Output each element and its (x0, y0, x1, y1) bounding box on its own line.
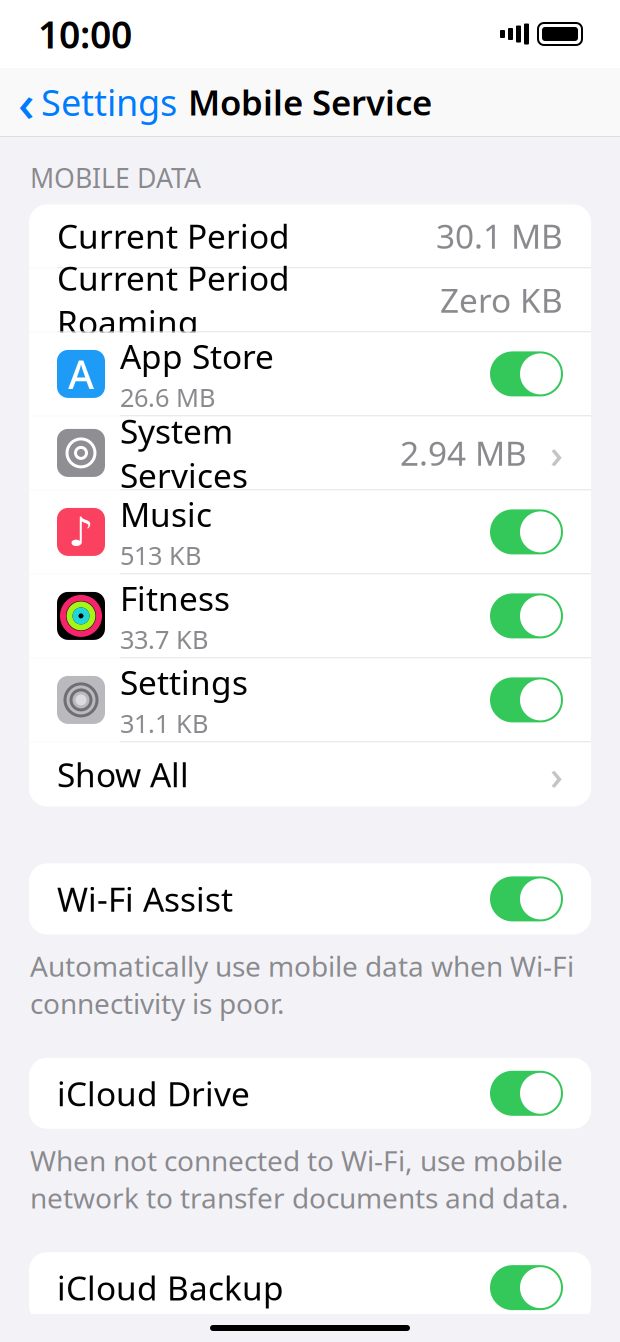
staticText: Automatically use mobile data when Wi-Fi… (30, 947, 574, 1022)
staticText: 513 KB (120, 538, 201, 572)
staticText: iCloud Drive (57, 1071, 250, 1115)
staticText: iCloud Backup (57, 1265, 284, 1310)
staticText: 26.6 MB (120, 380, 215, 414)
staticText: 33.7 KB (120, 622, 208, 656)
staticText: Mobile Service (188, 79, 432, 125)
button[interactable]: Show All (29, 742, 591, 806)
button[interactable]: iCloud Backup (29, 1252, 591, 1323)
staticText: › (550, 426, 563, 479)
staticText: MOBILE DATA (30, 160, 201, 195)
staticText: Settings (41, 78, 177, 126)
staticText: ♪ (68, 509, 94, 555)
staticText: Show All (57, 752, 189, 797)
button[interactable]: Settings (29, 658, 591, 741)
staticText: 10:00 (38, 9, 132, 59)
staticText: 2.94 MB (400, 431, 527, 475)
staticText: App Store (120, 334, 274, 378)
staticText: Wi-Fi Assist (57, 877, 233, 921)
staticText: Current Period Roaming (57, 256, 290, 344)
staticText: When not connected to Wi-Fi, use mobile … (30, 1142, 569, 1216)
button[interactable]: A (29, 332, 591, 415)
staticText: Current Period (57, 214, 290, 258)
button[interactable]: Wi-Fi Assist (29, 863, 591, 934)
button[interactable]: Current Period Roaming (29, 268, 591, 331)
button[interactable]: Current Period (29, 204, 591, 267)
staticText: 31.1 KB (120, 706, 208, 740)
button[interactable]: Fitness (29, 574, 591, 657)
button[interactable]: ‹ (0, 62, 177, 142)
button[interactable]: System Services (29, 416, 591, 489)
staticText: Zero KB (440, 278, 563, 322)
button[interactable]: iCloud Drive (29, 1058, 591, 1129)
staticText: Music (120, 492, 212, 536)
staticText: Fitness (120, 576, 230, 620)
staticText: › (550, 748, 563, 801)
staticText: 30.1 MB (436, 214, 563, 258)
staticText: ‹ (18, 68, 35, 136)
staticText: Settings (120, 660, 248, 704)
staticText: A (68, 347, 94, 400)
button[interactable]: ♪ (29, 490, 591, 573)
staticText: System Services (120, 409, 248, 497)
